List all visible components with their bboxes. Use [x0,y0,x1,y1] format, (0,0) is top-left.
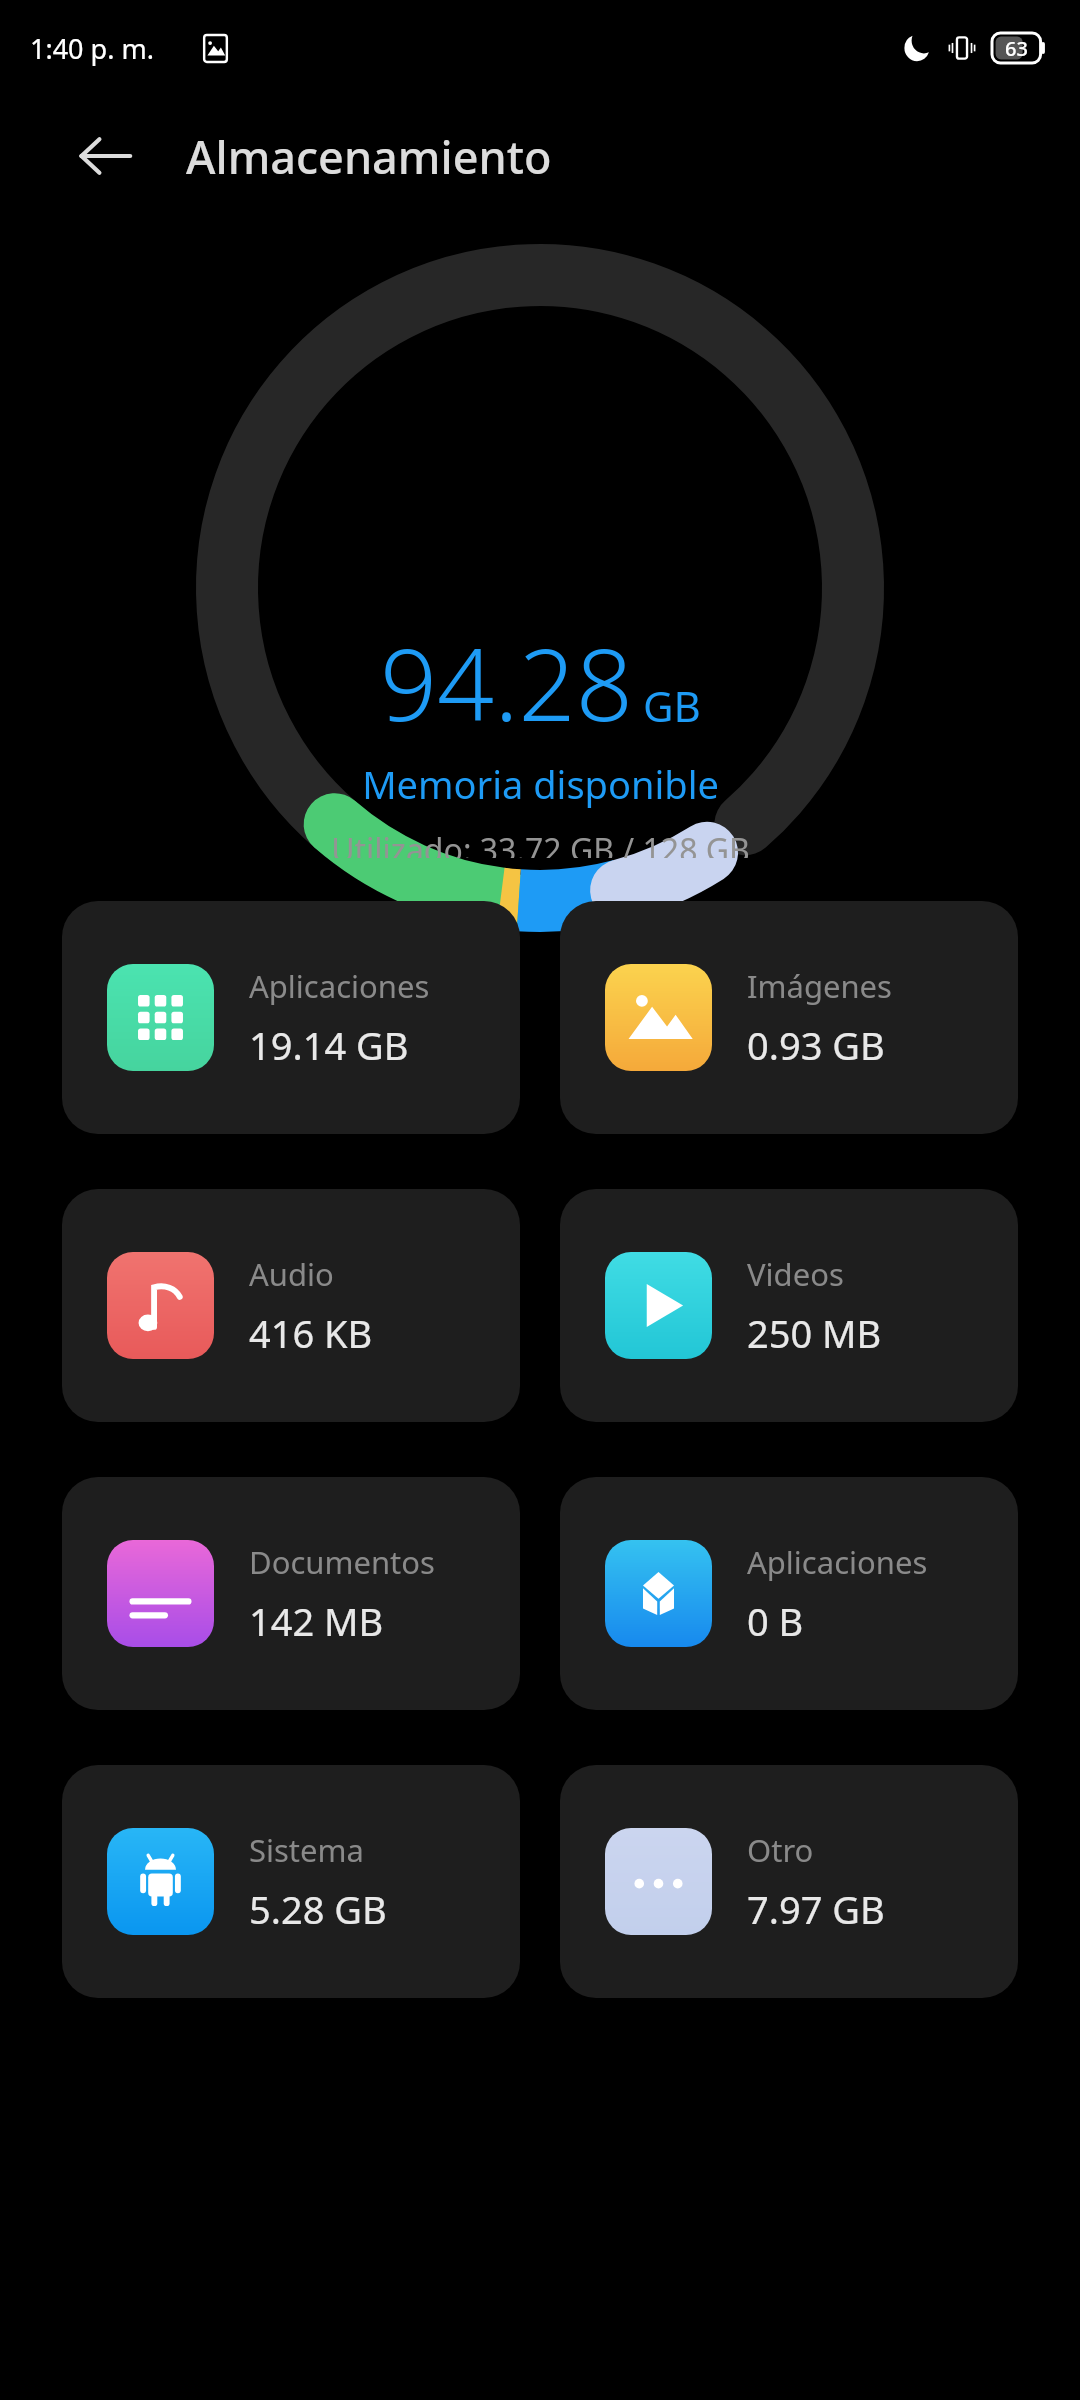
staticText: 94.28 [380,614,633,750]
staticText: Aplicaciones [747,1541,928,1583]
staticText: Audio [249,1253,334,1295]
staticText: 142 MB [249,1595,384,1647]
staticText: 5.28 GB [249,1883,387,1935]
staticText: 63 [1005,35,1028,62]
staticText: Utilizado: 33.72 GB / 128 GB [331,828,750,858]
staticText: Imágenes [747,965,892,1007]
staticText: 1:40 p. m. [30,30,154,67]
staticText: Otro [747,1829,814,1871]
staticText: Documentos [249,1541,435,1583]
button[interactable]: Atrás [52,103,158,209]
staticText: GB [643,677,701,734]
button[interactable]: Aplicaciones [62,901,520,1134]
staticText: 7.97 GB [747,1883,885,1935]
staticText: Almacenamiento [186,126,552,187]
staticText: Sistema [249,1829,364,1871]
button[interactable]: Audio [62,1189,520,1422]
staticText: 0.93 GB [747,1019,885,1071]
staticText: Videos [747,1253,844,1295]
staticText: 250 MB [747,1307,882,1359]
button[interactable]: Otro [560,1765,1018,1998]
button[interactable]: Imágenes [560,901,1018,1134]
staticText: Memoria disponible [362,758,719,810]
button[interactable]: Documentos [62,1477,520,1710]
staticText: 416 KB [249,1307,373,1359]
button[interactable]: Aplicaciones [560,1477,1018,1710]
button[interactable]: Sistema [62,1765,520,1998]
staticText: 19.14 GB [249,1019,409,1071]
button[interactable]: Videos [560,1189,1018,1422]
staticText: Aplicaciones [249,965,430,1007]
staticText: 0 B [747,1595,804,1647]
